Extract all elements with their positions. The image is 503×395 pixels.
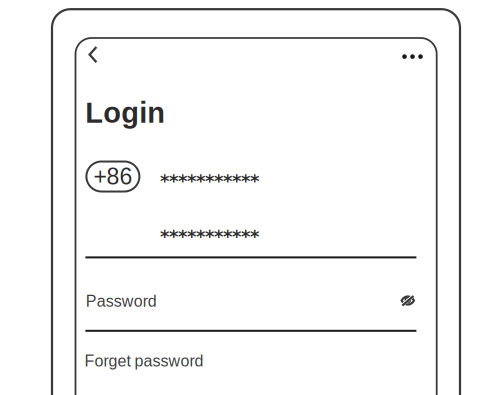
staticText: Login (85, 96, 165, 129)
staticText: Forget password (84, 352, 203, 370)
button[interactable]: Password (86, 292, 157, 310)
button[interactable]: Show password (396, 290, 420, 310)
button[interactable]: Country code +86 (86, 161, 139, 191)
staticText: *********** (160, 226, 259, 247)
button[interactable]: Forget password (84, 352, 203, 370)
button[interactable]: Phone number (160, 171, 259, 192)
staticText: *********** (160, 171, 259, 192)
staticText: +86 (93, 164, 132, 189)
button[interactable]: Phone number continued (160, 226, 259, 247)
button[interactable]: More options (395, 43, 429, 71)
staticText: Password (86, 292, 157, 310)
button[interactable]: Back (78, 40, 108, 70)
